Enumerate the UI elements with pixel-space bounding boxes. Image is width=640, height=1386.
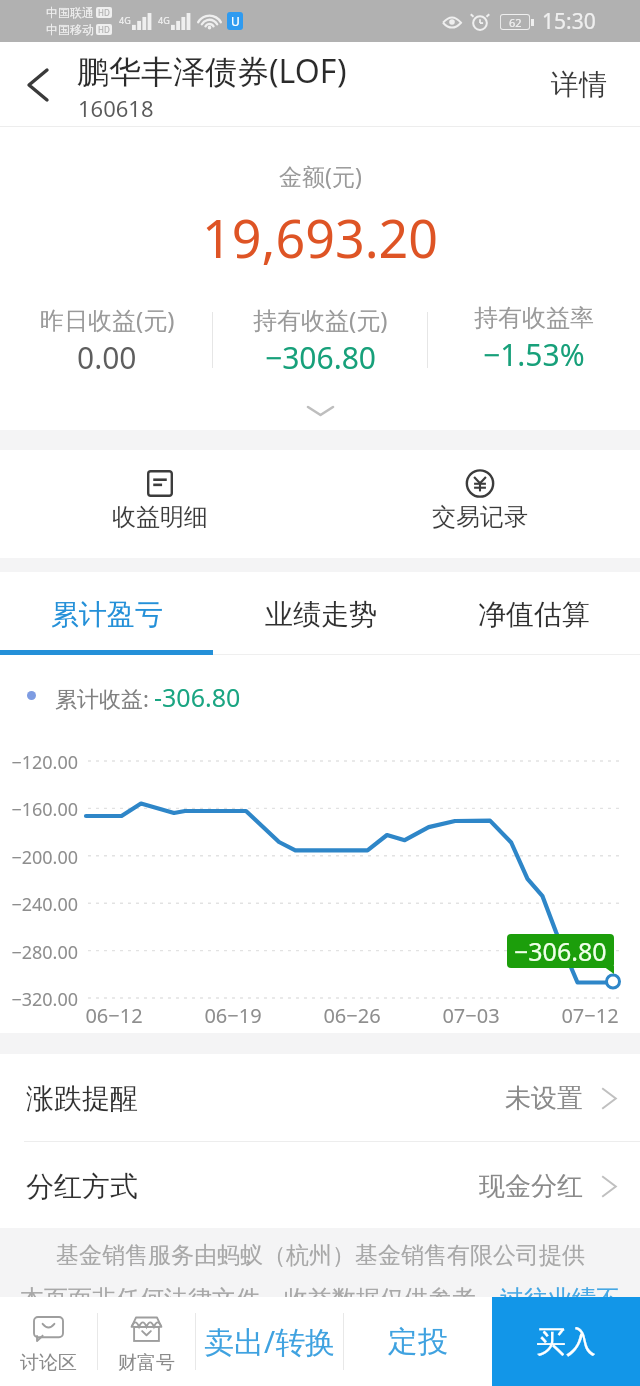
button[interactable]: 收益明细	[0, 450, 320, 558]
staticText: U	[231, 13, 240, 29]
button[interactable]: 分红方式	[0, 1142, 640, 1230]
button[interactable]: 业绩走势	[214, 572, 427, 655]
staticText: 06−19	[193, 1002, 273, 1029]
staticText: −160.00	[0, 797, 78, 822]
staticText: 15:30	[542, 7, 596, 36]
staticText: 收益明细	[112, 502, 208, 532]
staticText: 4G	[158, 14, 170, 26]
staticText: 累计收益:	[55, 683, 149, 713]
staticText: 06−12	[74, 1002, 154, 1029]
button[interactable]: 昨日收益(元)	[0, 303, 214, 383]
staticText: 业绩走势	[265, 597, 377, 632]
staticText: 买入	[536, 1323, 596, 1361]
button[interactable]: 累计盈亏	[0, 572, 214, 655]
button[interactable]: 买入	[492, 1297, 640, 1386]
staticText: 讨论区	[20, 1351, 77, 1375]
staticText: −306.80	[265, 337, 376, 378]
button[interactable]: 净值估算	[427, 572, 640, 655]
staticText: 中国移动	[46, 22, 94, 37]
staticText: 分红方式	[26, 1169, 138, 1204]
staticText: 持有收益(元)	[253, 303, 388, 336]
staticText: 过往业绩不	[500, 1284, 620, 1314]
staticText: −200.00	[0, 845, 78, 870]
staticText: 昨日收益(元)	[40, 303, 175, 336]
staticText: 持有收益率	[474, 303, 594, 333]
button[interactable]: 详情	[545, 59, 613, 110]
button[interactable]: 涨跌提醒	[0, 1054, 640, 1142]
staticText: 07−12	[550, 1002, 630, 1029]
staticText: 财富号	[118, 1351, 175, 1375]
staticText: 07−03	[431, 1002, 511, 1029]
staticText: −120.00	[0, 750, 78, 775]
staticText: 净值估算	[478, 597, 590, 632]
staticText: 未设置	[505, 1082, 583, 1115]
staticText: 基金销售服务由蚂蚁（杭州）基金销售有限公司提供	[56, 1241, 585, 1270]
staticText: 定投	[388, 1323, 448, 1361]
staticText: 中国联通	[46, 5, 94, 20]
staticText: 4G	[119, 14, 131, 26]
staticText: −1.53%	[483, 334, 585, 375]
staticText: 累计盈亏	[51, 597, 163, 632]
staticText: 交易记录	[432, 502, 528, 532]
staticText: 详情	[551, 67, 607, 102]
button[interactable]: 财富号	[98, 1297, 195, 1386]
button[interactable]: Expand details	[285, 393, 355, 429]
button[interactable]: 讨论区	[0, 1297, 97, 1386]
button[interactable]: 卖出/转换	[196, 1297, 343, 1386]
staticText: 现金分红	[479, 1170, 583, 1203]
staticText: 鹏华丰泽债券(LOF)	[77, 49, 347, 93]
staticText: 62	[509, 15, 522, 30]
button[interactable]: 持有收益率	[427, 303, 640, 383]
button[interactable]: 定投	[344, 1297, 492, 1386]
staticText: 0.00	[77, 337, 137, 378]
staticText: HD	[98, 24, 110, 35]
staticText: 本页面非任何法律文件，收益数据仅供参考，	[20, 1284, 500, 1314]
staticText: 160618	[78, 93, 154, 123]
button[interactable]: 持有收益(元)	[214, 303, 427, 383]
staticText: −280.00	[0, 940, 78, 965]
staticText: 涨跌提醒	[26, 1081, 138, 1116]
staticText: 06−26	[312, 1002, 392, 1029]
staticText: -306.80	[154, 680, 241, 714]
staticText: 19,693.20	[202, 202, 439, 273]
staticText: 金额(元)	[279, 160, 362, 191]
button[interactable]: 交易记录	[320, 450, 640, 558]
staticText: HD	[98, 7, 110, 18]
staticText: 卖出/转换	[204, 1321, 336, 1362]
button[interactable]: Back	[9, 56, 67, 114]
staticText: −240.00	[0, 892, 78, 917]
staticText: −306.80	[514, 934, 607, 968]
staticText: −320.00	[0, 987, 78, 1012]
